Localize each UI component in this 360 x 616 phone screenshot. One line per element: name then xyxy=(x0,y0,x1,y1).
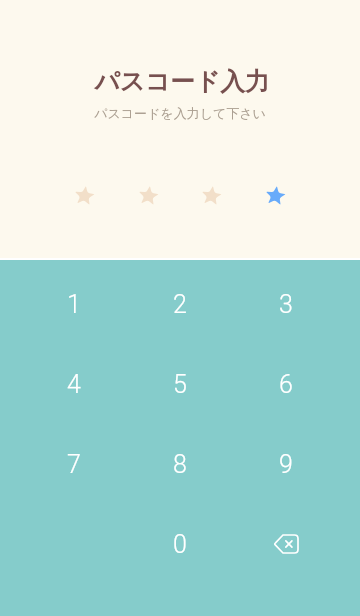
button[interactable]: 8 xyxy=(127,424,233,504)
button[interactable]: 2 xyxy=(127,264,233,344)
button[interactable]: 5 xyxy=(127,344,233,424)
button[interactable]: 3 xyxy=(233,264,339,344)
button[interactable]: 0 xyxy=(127,504,233,584)
button[interactable]: 6 xyxy=(233,344,339,424)
staticText: 5 xyxy=(173,370,187,399)
button[interactable]: Delete xyxy=(233,504,339,584)
staticText: 0 xyxy=(173,530,187,559)
staticText: 3 xyxy=(279,290,293,319)
staticText: 8 xyxy=(173,450,187,479)
staticText: 2 xyxy=(173,290,187,319)
staticText: パスコードを入力して下さい xyxy=(0,105,360,121)
button[interactable]: 4 xyxy=(21,344,127,424)
staticText: 1 xyxy=(67,290,81,319)
staticText: パスコード入力 xyxy=(2,66,360,97)
staticText: 9 xyxy=(279,450,293,479)
button[interactable]: 1 xyxy=(21,264,127,344)
staticText: 6 xyxy=(279,370,293,399)
button[interactable]: 7 xyxy=(21,424,127,504)
staticText: 4 xyxy=(67,370,81,399)
staticText: 7 xyxy=(67,450,81,479)
button[interactable]: 9 xyxy=(233,424,339,504)
